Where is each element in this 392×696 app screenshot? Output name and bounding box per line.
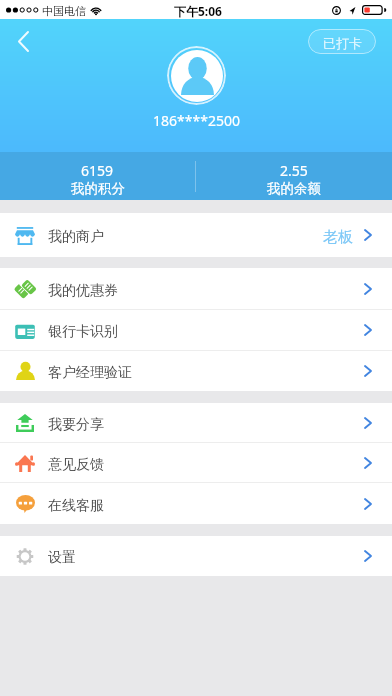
staticText: 6159 <box>81 161 114 180</box>
staticText: 我的积分 <box>71 180 125 197</box>
staticText: 在线客服 <box>48 497 104 515</box>
button[interactable]: 设置 <box>0 536 392 576</box>
button[interactable]: 客户经理验证 <box>0 351 392 391</box>
staticText: 2.55 <box>280 161 308 180</box>
button[interactable]: 意见反馈 <box>0 443 392 482</box>
staticText: 老板 <box>323 228 353 247</box>
staticText: 设置 <box>48 549 76 567</box>
button[interactable]: 我要分享 <box>0 403 392 442</box>
button[interactable]: Back <box>2 20 45 63</box>
button[interactable]: 2.55 <box>196 156 392 197</box>
button[interactable]: 银行卡识别 <box>0 310 392 350</box>
staticText: 我的余额 <box>267 180 321 197</box>
button[interactable]: 我的商户 <box>0 213 392 257</box>
button[interactable]: 已打卡 <box>308 29 376 54</box>
staticText: 银行卡识别 <box>48 323 118 341</box>
staticText: 186****2500 <box>153 111 240 130</box>
staticText: 我的优惠券 <box>48 282 118 300</box>
staticText: 意见反馈 <box>48 456 104 474</box>
button[interactable]: 我的优惠券 <box>0 268 392 309</box>
staticText: 中国电信 <box>42 4 86 18</box>
staticText: 我的商户 <box>48 228 104 246</box>
staticText: 客户经理验证 <box>48 364 132 382</box>
staticText: 已打卡 <box>323 35 362 51</box>
staticText: 我要分享 <box>48 416 104 434</box>
button[interactable]: 6159 <box>0 156 195 197</box>
staticText: 下午5:06 <box>174 3 222 19</box>
button[interactable]: 在线客服 <box>0 483 392 524</box>
